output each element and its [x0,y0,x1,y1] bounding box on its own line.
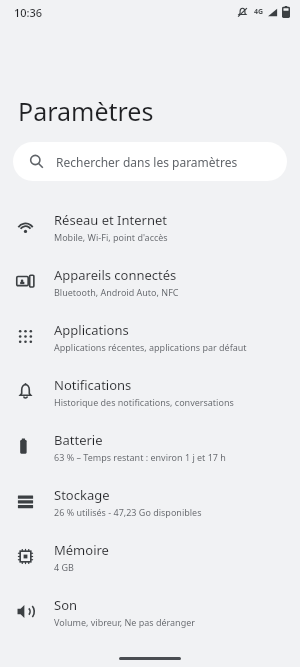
button[interactable]: Stockage [0,474,300,529]
staticText: 10:36 [14,5,43,20]
button[interactable]: Rechercher dans les paramètres [13,142,287,181]
staticText: Paramètres [18,94,154,128]
staticText: 26 % utilisés - 47,23 Go disponibles [54,506,202,518]
button[interactable]: Applications [0,309,300,364]
staticText: Appareils connectés [54,266,177,284]
button[interactable]: Mémoire [0,529,300,584]
staticText: Rechercher dans les paramètres [56,154,238,170]
staticText: Applications récentes, applications par … [54,341,247,353]
button[interactable]: Notifications [0,364,300,419]
staticText: Stockage [54,486,110,504]
staticText: Applications [54,321,129,339]
staticText: Bluetooth, Android Auto, NFC [54,286,179,298]
staticText: Batterie [54,431,103,449]
button[interactable]: Son [0,584,300,639]
button[interactable]: Appareils connectés [0,254,300,309]
staticText: Notifications [54,376,132,394]
staticText: 63 % – Temps restant : environ 1 j et 17… [54,451,226,463]
staticText: Mobile, Wi-Fi, point d'accès [54,231,168,243]
staticText: 4 GB [54,561,74,573]
staticText: Historique des notifications, conversati… [54,396,234,408]
staticText: Volume, vibreur, Ne pas déranger [54,616,196,628]
button[interactable]: Réseau et Internet [0,199,300,254]
staticText: Mémoire [54,541,109,559]
staticText: Son [54,596,78,614]
staticText: 4G [254,7,264,17]
button[interactable]: Batterie [0,419,300,474]
staticText: Réseau et Internet [54,211,167,229]
